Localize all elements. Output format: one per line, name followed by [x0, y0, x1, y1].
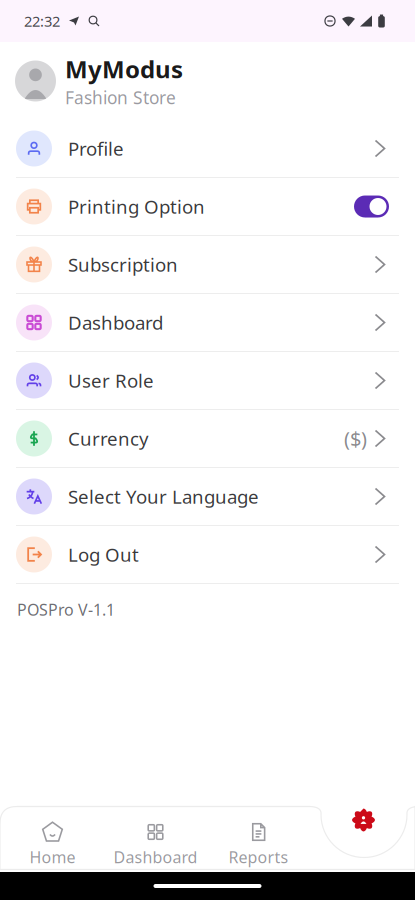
button[interactable]: Dashboard [104, 820, 207, 874]
staticText: Home [29, 846, 75, 868]
staticText: User Role [68, 368, 154, 393]
button[interactable]: Printing Option [0, 178, 415, 235]
staticText: Log Out [68, 542, 139, 567]
button[interactable]: Currency [0, 410, 415, 467]
staticText: Fashion Store [65, 86, 176, 109]
staticText: Dashboard [68, 310, 163, 335]
button[interactable]: Home [1, 820, 104, 874]
button[interactable]: Select Your Language [0, 468, 415, 525]
staticText: Subscription [68, 252, 178, 277]
button[interactable]: Log Out [0, 526, 415, 583]
button[interactable]: Subscription [0, 236, 415, 293]
button[interactable]: User Role [0, 352, 415, 409]
button[interactable]: Support [352, 808, 375, 831]
staticText: Dashboard [113, 846, 197, 868]
button[interactable]: Dashboard [0, 294, 415, 351]
staticText: Select Your Language [68, 484, 259, 509]
button[interactable]: Profile [0, 120, 415, 177]
staticText: ($) [344, 425, 367, 452]
staticText: Printing Option [68, 194, 205, 219]
staticText: 22:32 [24, 11, 60, 31]
staticText: Profile [68, 136, 124, 161]
staticText: Currency [68, 426, 149, 451]
staticText: Reports [228, 846, 288, 868]
staticText: MyModus [65, 53, 183, 85]
button[interactable]: Reports [207, 820, 310, 874]
staticText: POSPro V-1.1 [17, 599, 115, 620]
